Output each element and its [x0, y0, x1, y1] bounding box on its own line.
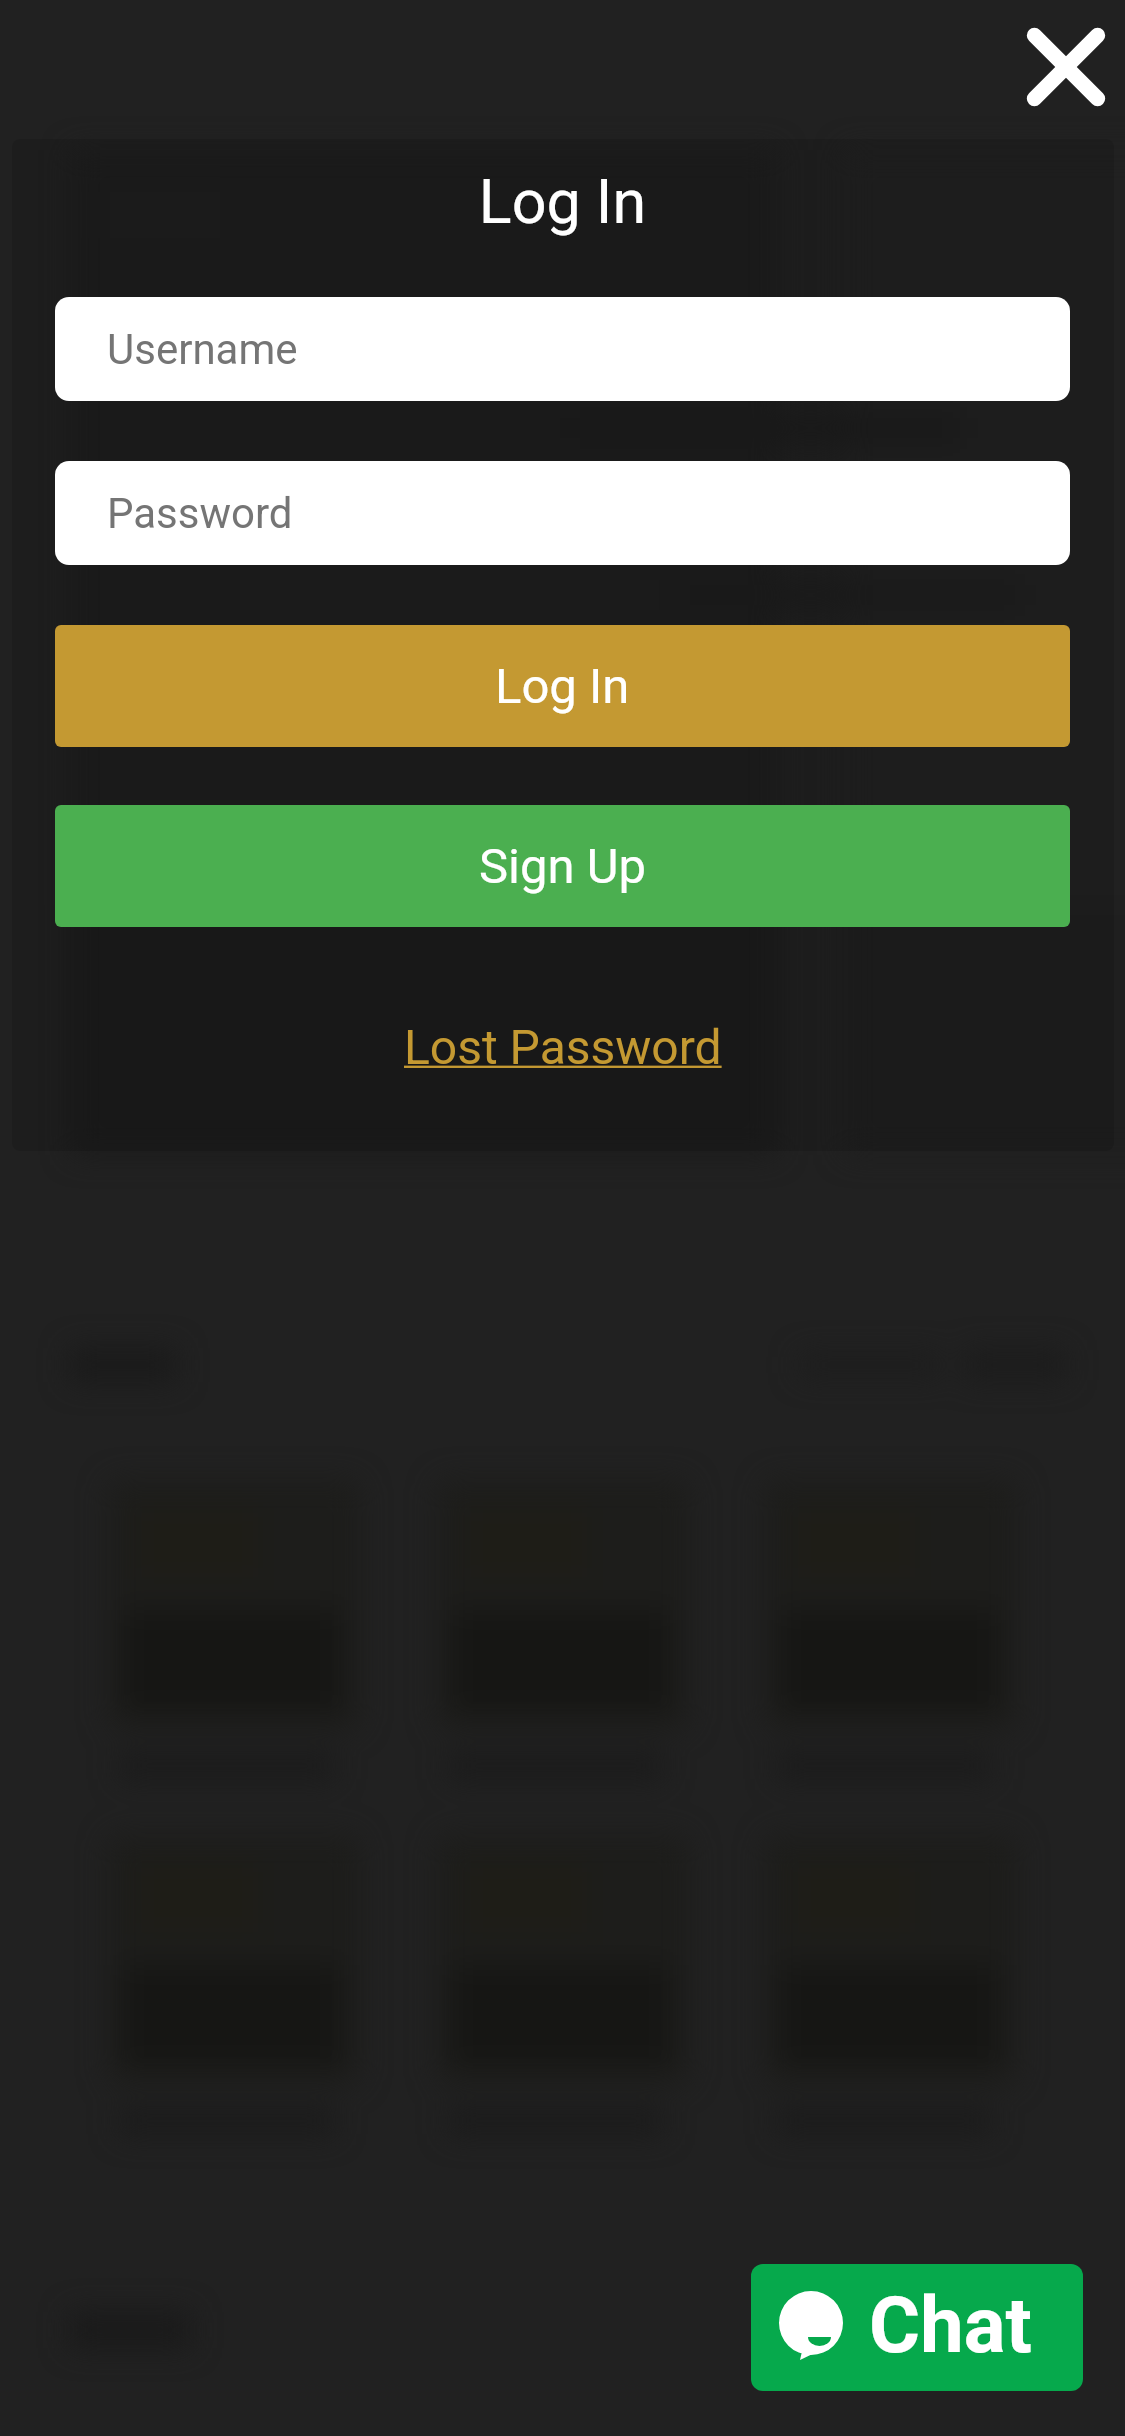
staticText: Log In [495, 658, 630, 715]
staticText: Lost Password [404, 1019, 722, 1075]
button[interactable]: Username [55, 297, 1070, 401]
button[interactable]: Lost Password [380, 1008, 746, 1086]
button[interactable]: Chat [751, 2264, 1083, 2391]
button[interactable]: Password [55, 461, 1070, 565]
staticText: Log In [0, 166, 1125, 237]
button[interactable]: Close [1006, 7, 1125, 127]
button[interactable]: Sign Up [55, 805, 1070, 927]
staticText: Sign Up [479, 838, 647, 895]
staticText: Chat [869, 2280, 1032, 2371]
button[interactable]: Log In [55, 625, 1070, 747]
staticText: Password [107, 489, 293, 538]
staticText: Username [107, 325, 298, 374]
